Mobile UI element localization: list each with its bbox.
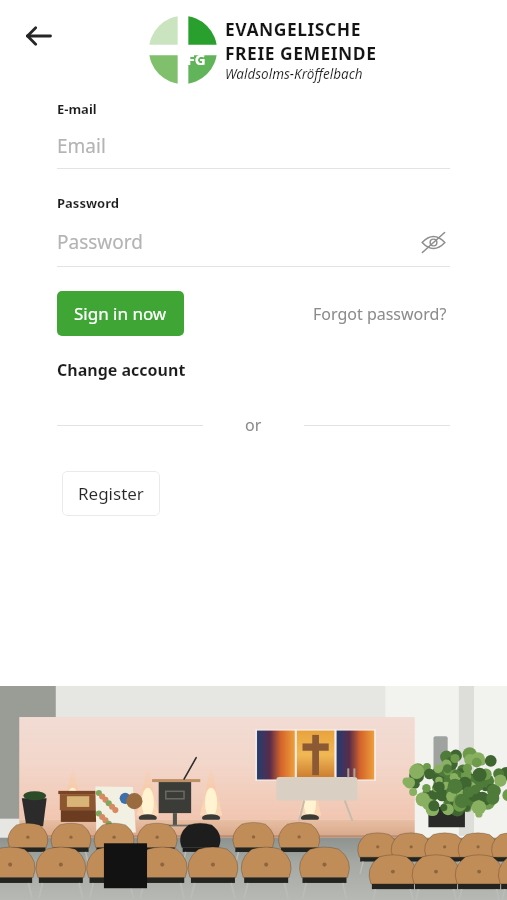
button[interactable]: Sign in now — [57, 291, 184, 336]
staticText: E-mail — [57, 100, 97, 118]
staticText: Password — [57, 194, 119, 212]
staticText: Register — [78, 482, 144, 505]
button[interactable]: Change account — [57, 359, 186, 381]
staticText: Sign in now — [74, 302, 167, 325]
button[interactable]: Back — [18, 15, 60, 57]
button[interactable]: Register — [62, 471, 160, 516]
staticText: EFG — [178, 49, 206, 69]
button[interactable]: Forgot password? — [310, 300, 450, 328]
staticText: Waldsolms-Kröffelbach — [225, 65, 363, 83]
button[interactable]: Password — [57, 229, 416, 255]
staticText: or — [245, 414, 262, 436]
staticText: EVANGELISCHE — [225, 17, 361, 41]
staticText: Forgot password? — [313, 303, 447, 325]
staticText: Change account — [57, 359, 186, 381]
button[interactable]: Email — [57, 133, 450, 169]
staticText: Password — [57, 229, 143, 255]
staticText: FREIE GEMEINDE — [225, 41, 377, 65]
button[interactable]: Show password — [416, 225, 450, 259]
staticText: Email — [57, 133, 106, 159]
